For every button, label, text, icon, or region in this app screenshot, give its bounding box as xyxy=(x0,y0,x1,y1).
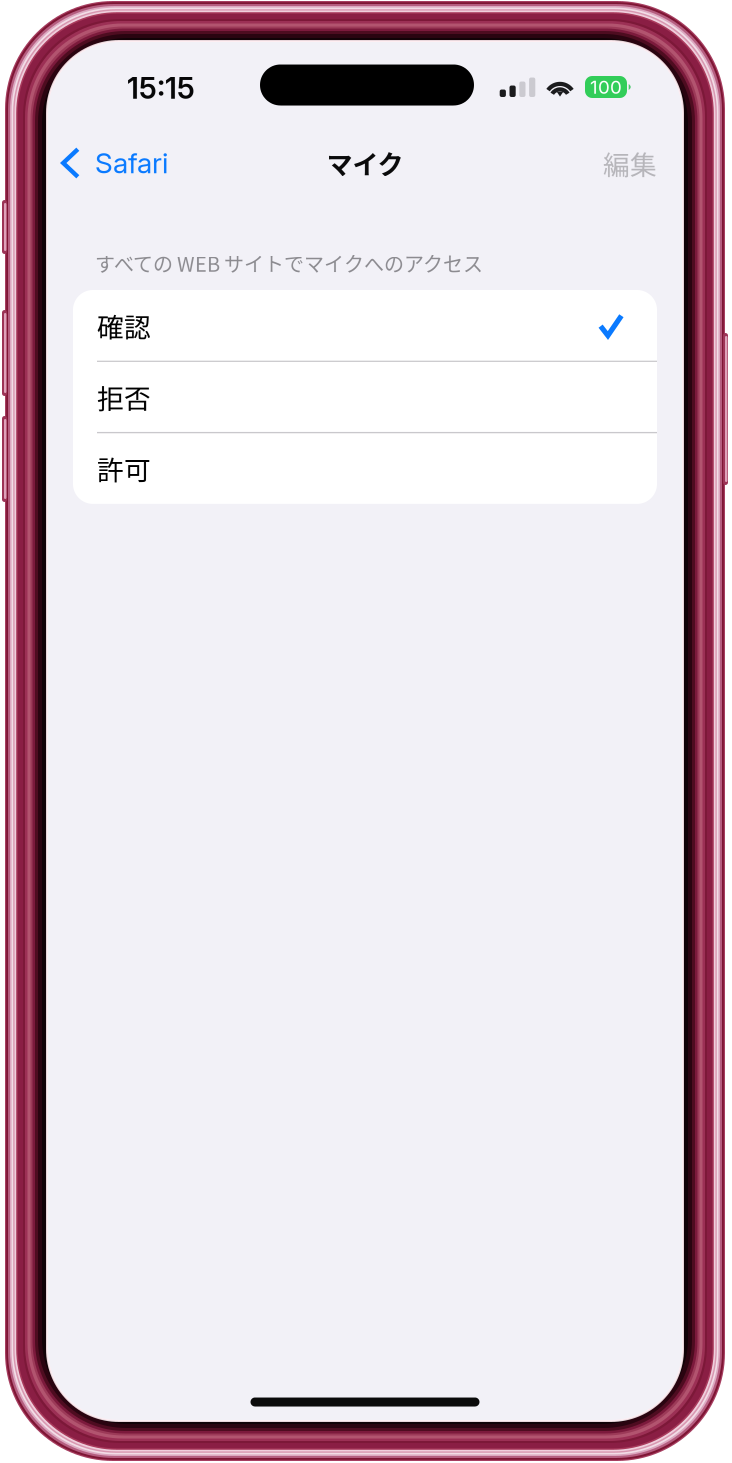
button[interactable]: Safari xyxy=(47,128,217,198)
button[interactable]: 編集 xyxy=(553,128,683,198)
staticText: 拒否 xyxy=(97,378,151,416)
staticText: 編集 xyxy=(603,144,657,182)
staticText: 100 xyxy=(590,76,622,98)
button[interactable]: 拒否 xyxy=(73,361,657,433)
staticText: すべての WEB サイトでマイクへのアクセス xyxy=(95,248,483,277)
staticText: 15:15 xyxy=(127,70,195,106)
staticText: Safari xyxy=(95,146,168,180)
staticText: 許可 xyxy=(97,449,151,487)
staticText: マイク xyxy=(326,144,403,182)
button[interactable]: 確認 xyxy=(73,290,657,361)
button[interactable]: 許可 xyxy=(73,433,657,504)
staticText: 確認 xyxy=(97,306,151,345)
